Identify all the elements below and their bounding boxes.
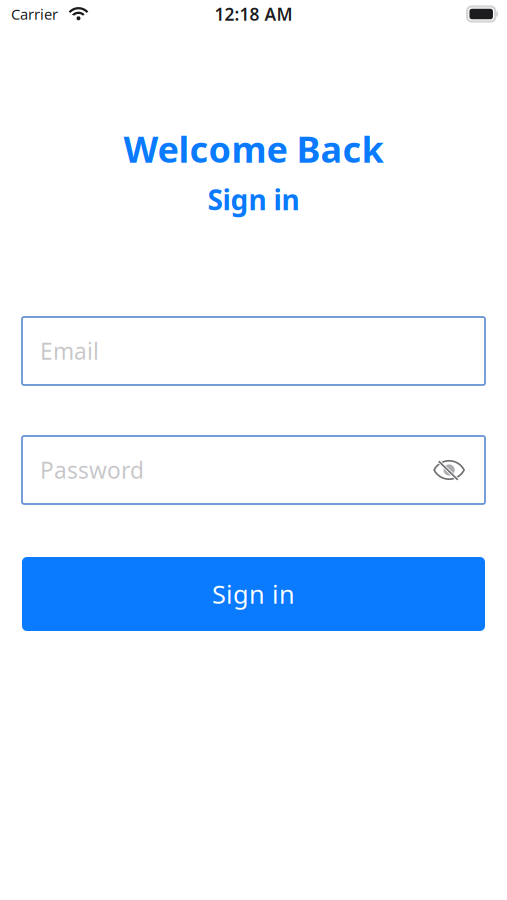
staticText: Sign in: [207, 181, 299, 218]
staticText: Email: [40, 336, 99, 366]
staticText: Welcome Back: [123, 125, 383, 173]
staticText: Sign in: [212, 577, 295, 611]
button[interactable]: Sign in: [22, 557, 485, 631]
staticText: Password: [40, 455, 144, 485]
staticText: 12:18 AM: [214, 2, 292, 25]
button[interactable]: Email: [22, 317, 485, 385]
button[interactable]: Password: [22, 436, 485, 504]
staticText: Carrier: [11, 4, 58, 24]
button[interactable]: Show password: [424, 453, 474, 487]
